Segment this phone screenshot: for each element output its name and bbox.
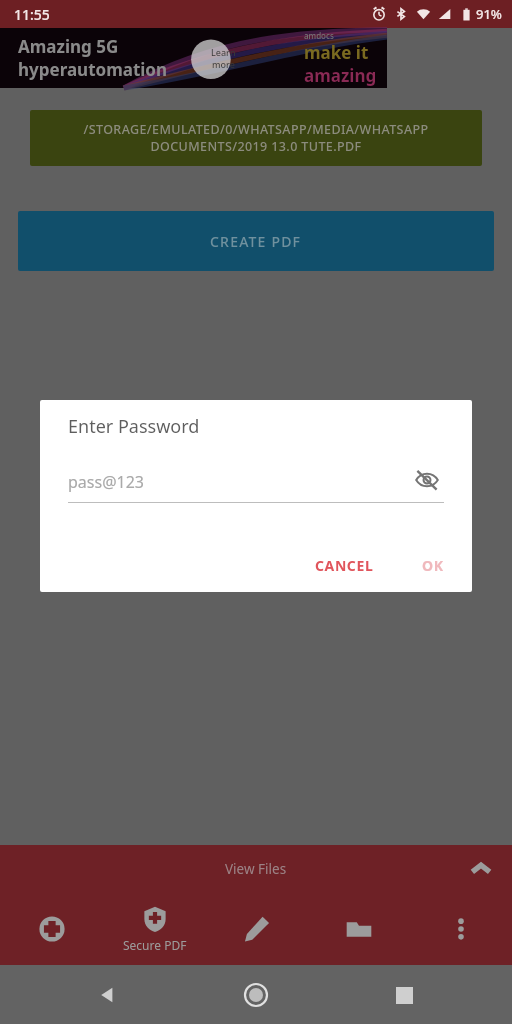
button[interactable]: View Files	[0, 845, 512, 893]
button[interactable]: Toggle password visibility	[410, 463, 444, 497]
button[interactable]: Secure PDF	[103, 893, 206, 965]
staticText: make it	[304, 41, 369, 64]
button[interactable]: Edit	[206, 893, 308, 965]
staticText: Secure PDF	[123, 937, 187, 953]
button[interactable]: CREATE PDF	[18, 211, 494, 271]
button[interactable]: /STORAGE/EMULATED/0/WHATSAPP/MEDIA/WHATS…	[30, 110, 482, 166]
staticText: Enter Password	[68, 414, 200, 439]
button[interactable]: Expand view files	[464, 852, 498, 886]
staticText: pass@123	[68, 471, 144, 493]
button[interactable]: Files	[308, 893, 410, 965]
staticText: /STORAGE/EMULATED/0/WHATSAPP/MEDIA/WHATS…	[30, 121, 482, 155]
button[interactable]: Home	[234, 973, 278, 1017]
staticText: View Files	[225, 860, 287, 878]
staticText: amdocs	[304, 30, 334, 41]
staticText: hyperautomation	[18, 58, 168, 81]
button[interactable]: CANCEL	[303, 547, 386, 584]
button[interactable]: Back	[88, 975, 128, 1015]
staticText: CREATE PDF	[210, 232, 302, 251]
button[interactable]: OK	[410, 547, 456, 584]
staticText: amazing	[304, 64, 377, 87]
button[interactable]: Advertisement	[0, 28, 387, 88]
staticText: 91%	[476, 5, 502, 23]
button[interactable]: Recent apps	[384, 975, 424, 1015]
staticText: more	[212, 58, 235, 70]
button[interactable]: More options	[410, 893, 512, 965]
button[interactable]: Add	[0, 893, 103, 965]
staticText: Learn	[211, 46, 236, 58]
staticText: CANCEL	[315, 556, 374, 575]
staticText: 11:55	[14, 5, 50, 24]
staticText: Amazing 5G	[18, 35, 119, 58]
staticText: OK	[422, 556, 444, 575]
